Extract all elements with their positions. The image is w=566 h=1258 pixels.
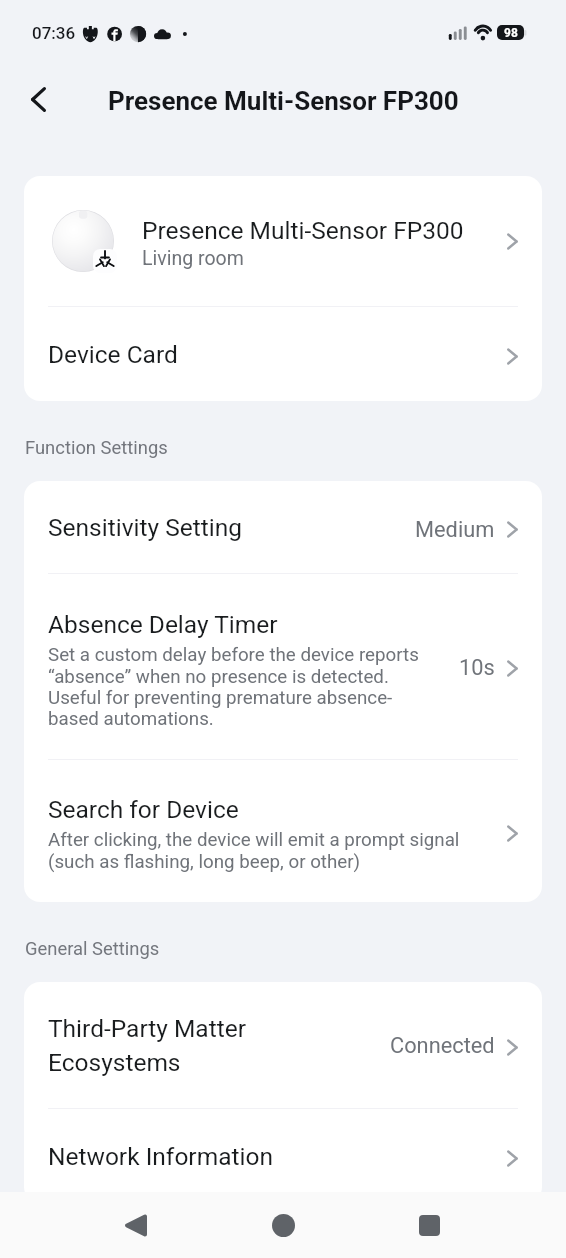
staticText: 10s	[459, 655, 495, 681]
button[interactable]: Home	[259, 1201, 307, 1249]
staticText: Device Card	[48, 340, 178, 369]
button[interactable]: Absence Delay Timer	[24, 574, 542, 759]
staticText: Sensitivity Setting	[48, 513, 242, 542]
staticText: Medium	[415, 517, 495, 543]
button[interactable]: Device Card	[24, 307, 542, 401]
staticText: Network Information	[48, 1142, 273, 1171]
button[interactable]: Presence Multi-Sensor FP300	[24, 176, 542, 306]
staticText: Presence Multi-Sensor FP300	[142, 216, 464, 245]
button[interactable]: Back	[112, 1201, 160, 1249]
staticText: After clicking, the device will emit a p…	[48, 829, 480, 872]
staticText: Absence Delay Timer	[48, 610, 278, 639]
staticText: Connected	[390, 1033, 495, 1059]
staticText: Function Settings	[25, 437, 168, 459]
button[interactable]: Search for Device	[24, 760, 542, 902]
button[interactable]: Sensitivity Setting	[24, 481, 542, 573]
staticText: Presence Multi-Sensor FP300	[108, 86, 459, 116]
button[interactable]: Network Information	[24, 1109, 542, 1203]
button[interactable]: Third-Party Matter Ecosystems	[24, 982, 542, 1108]
staticText: Living room	[142, 247, 244, 270]
button[interactable]: Back	[14, 77, 62, 125]
staticText: Search for Device	[48, 795, 239, 824]
staticText: 07:36	[32, 23, 76, 43]
button[interactable]: Recents	[405, 1201, 453, 1249]
staticText: Third-Party Matter Ecosystems	[48, 1014, 288, 1077]
staticText: General Settings	[25, 938, 160, 960]
staticText: Set a custom delay before the device rep…	[48, 644, 428, 729]
staticText: 98	[504, 26, 518, 40]
